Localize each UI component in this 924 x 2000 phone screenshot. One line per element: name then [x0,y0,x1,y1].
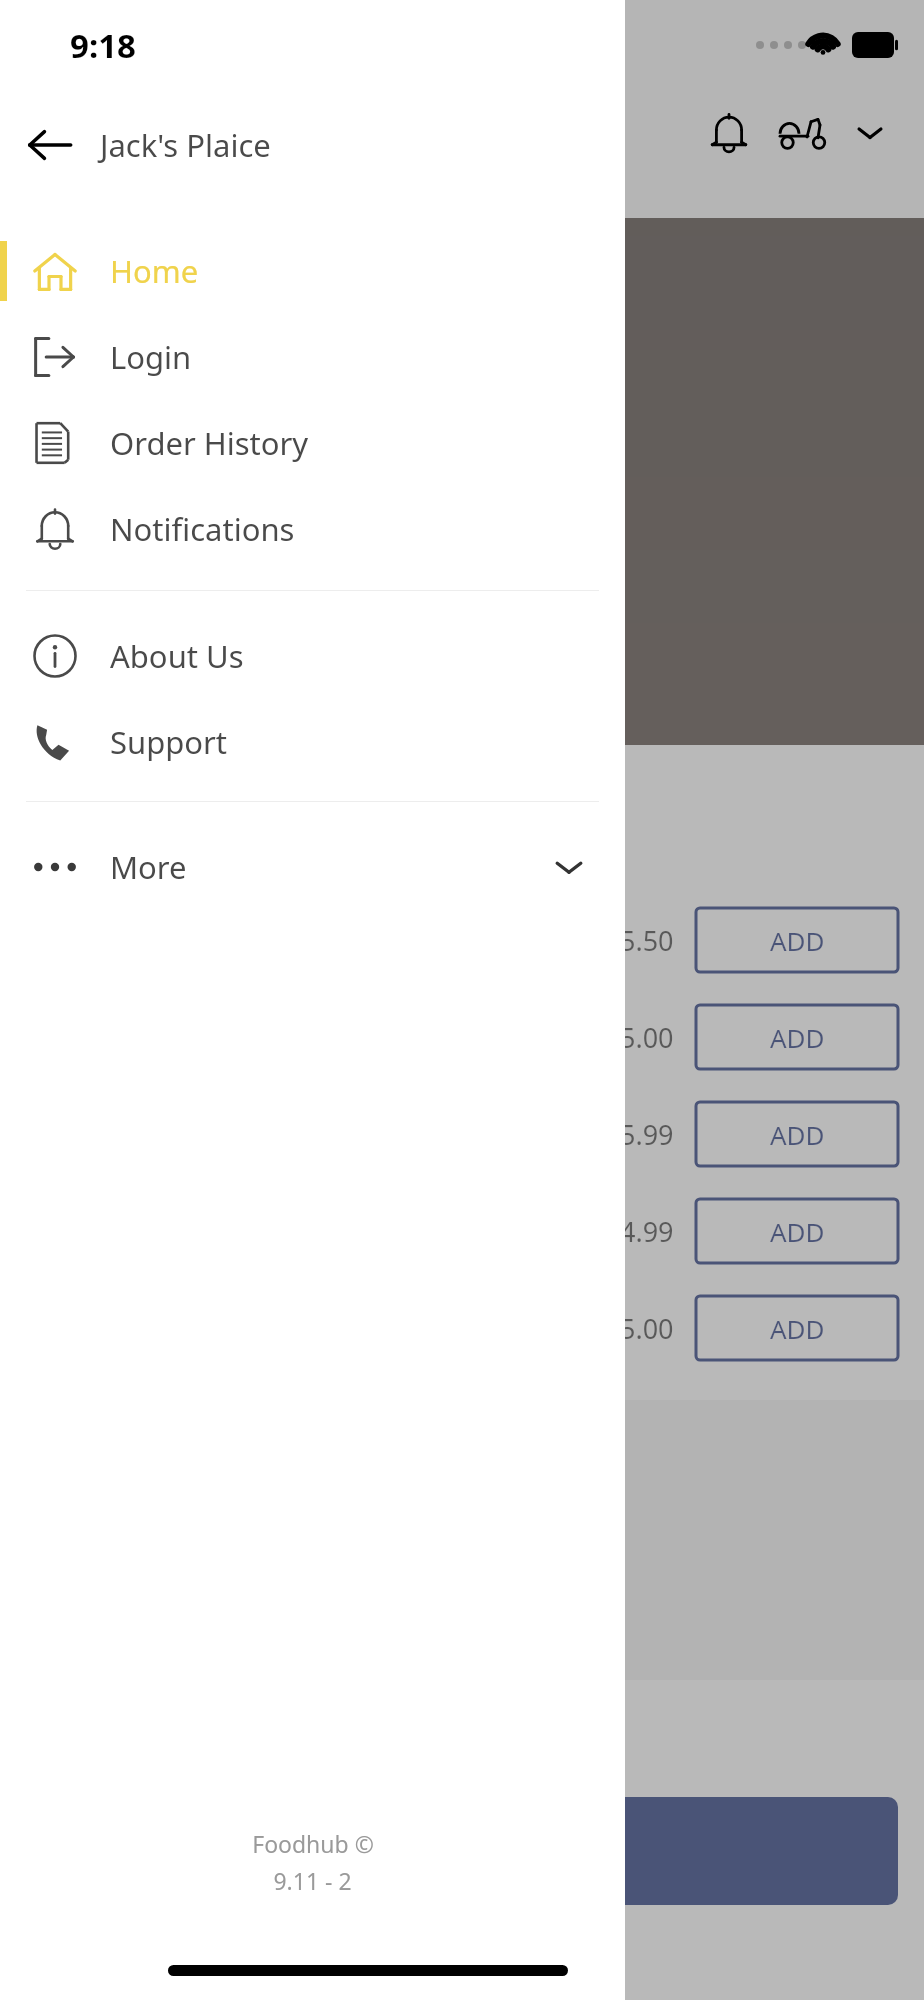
button[interactable]: ADD [696,908,898,972]
other: Back [27,122,73,168]
staticText: 5.00 [620,1310,674,1347]
button[interactable]: Notifications [0,486,625,572]
staticText: 5.99 [620,1116,674,1153]
button[interactable]: ADD [696,1199,898,1263]
button[interactable]: ADD [696,1005,898,1069]
staticText: ADD [770,923,825,958]
button[interactable]: Login [0,314,625,400]
button[interactable]: Support [0,699,625,785]
staticText: Notifications [110,508,295,550]
staticText: Order History [110,422,309,464]
button[interactable]: ADD [696,1296,898,1360]
staticText: ADD [770,1020,825,1055]
staticText: Jack's Plaice [100,124,271,166]
button[interactable]: ADD [696,1102,898,1166]
staticText: Login [110,336,192,378]
staticText: ADD [770,1117,825,1152]
staticText: About Us [110,635,244,677]
button[interactable] [26,1797,898,1905]
staticText: 9:18 [70,23,136,68]
button[interactable]: Order History [0,400,625,486]
staticText: More [110,846,187,888]
staticText: 4.99 [620,1213,674,1250]
button[interactable]: Expand [840,103,900,163]
staticText: Support [110,721,228,763]
staticText: 5.50 [620,922,674,959]
button[interactable]: More [0,824,625,910]
button[interactable]: Notifications [692,96,766,170]
staticText: Foodhub © [252,1828,374,1859]
button[interactable]: About Us [0,613,625,699]
staticText: ADD [770,1311,825,1346]
button[interactable]: Back [0,95,100,195]
staticText: ADD [770,1214,825,1249]
staticText: 5.00 [620,1019,674,1056]
staticText: Home [110,250,199,292]
button[interactable]: Delivery [766,96,840,170]
staticText: 9.11 - 2 [273,1865,352,1896]
button[interactable]: Home [0,228,625,314]
